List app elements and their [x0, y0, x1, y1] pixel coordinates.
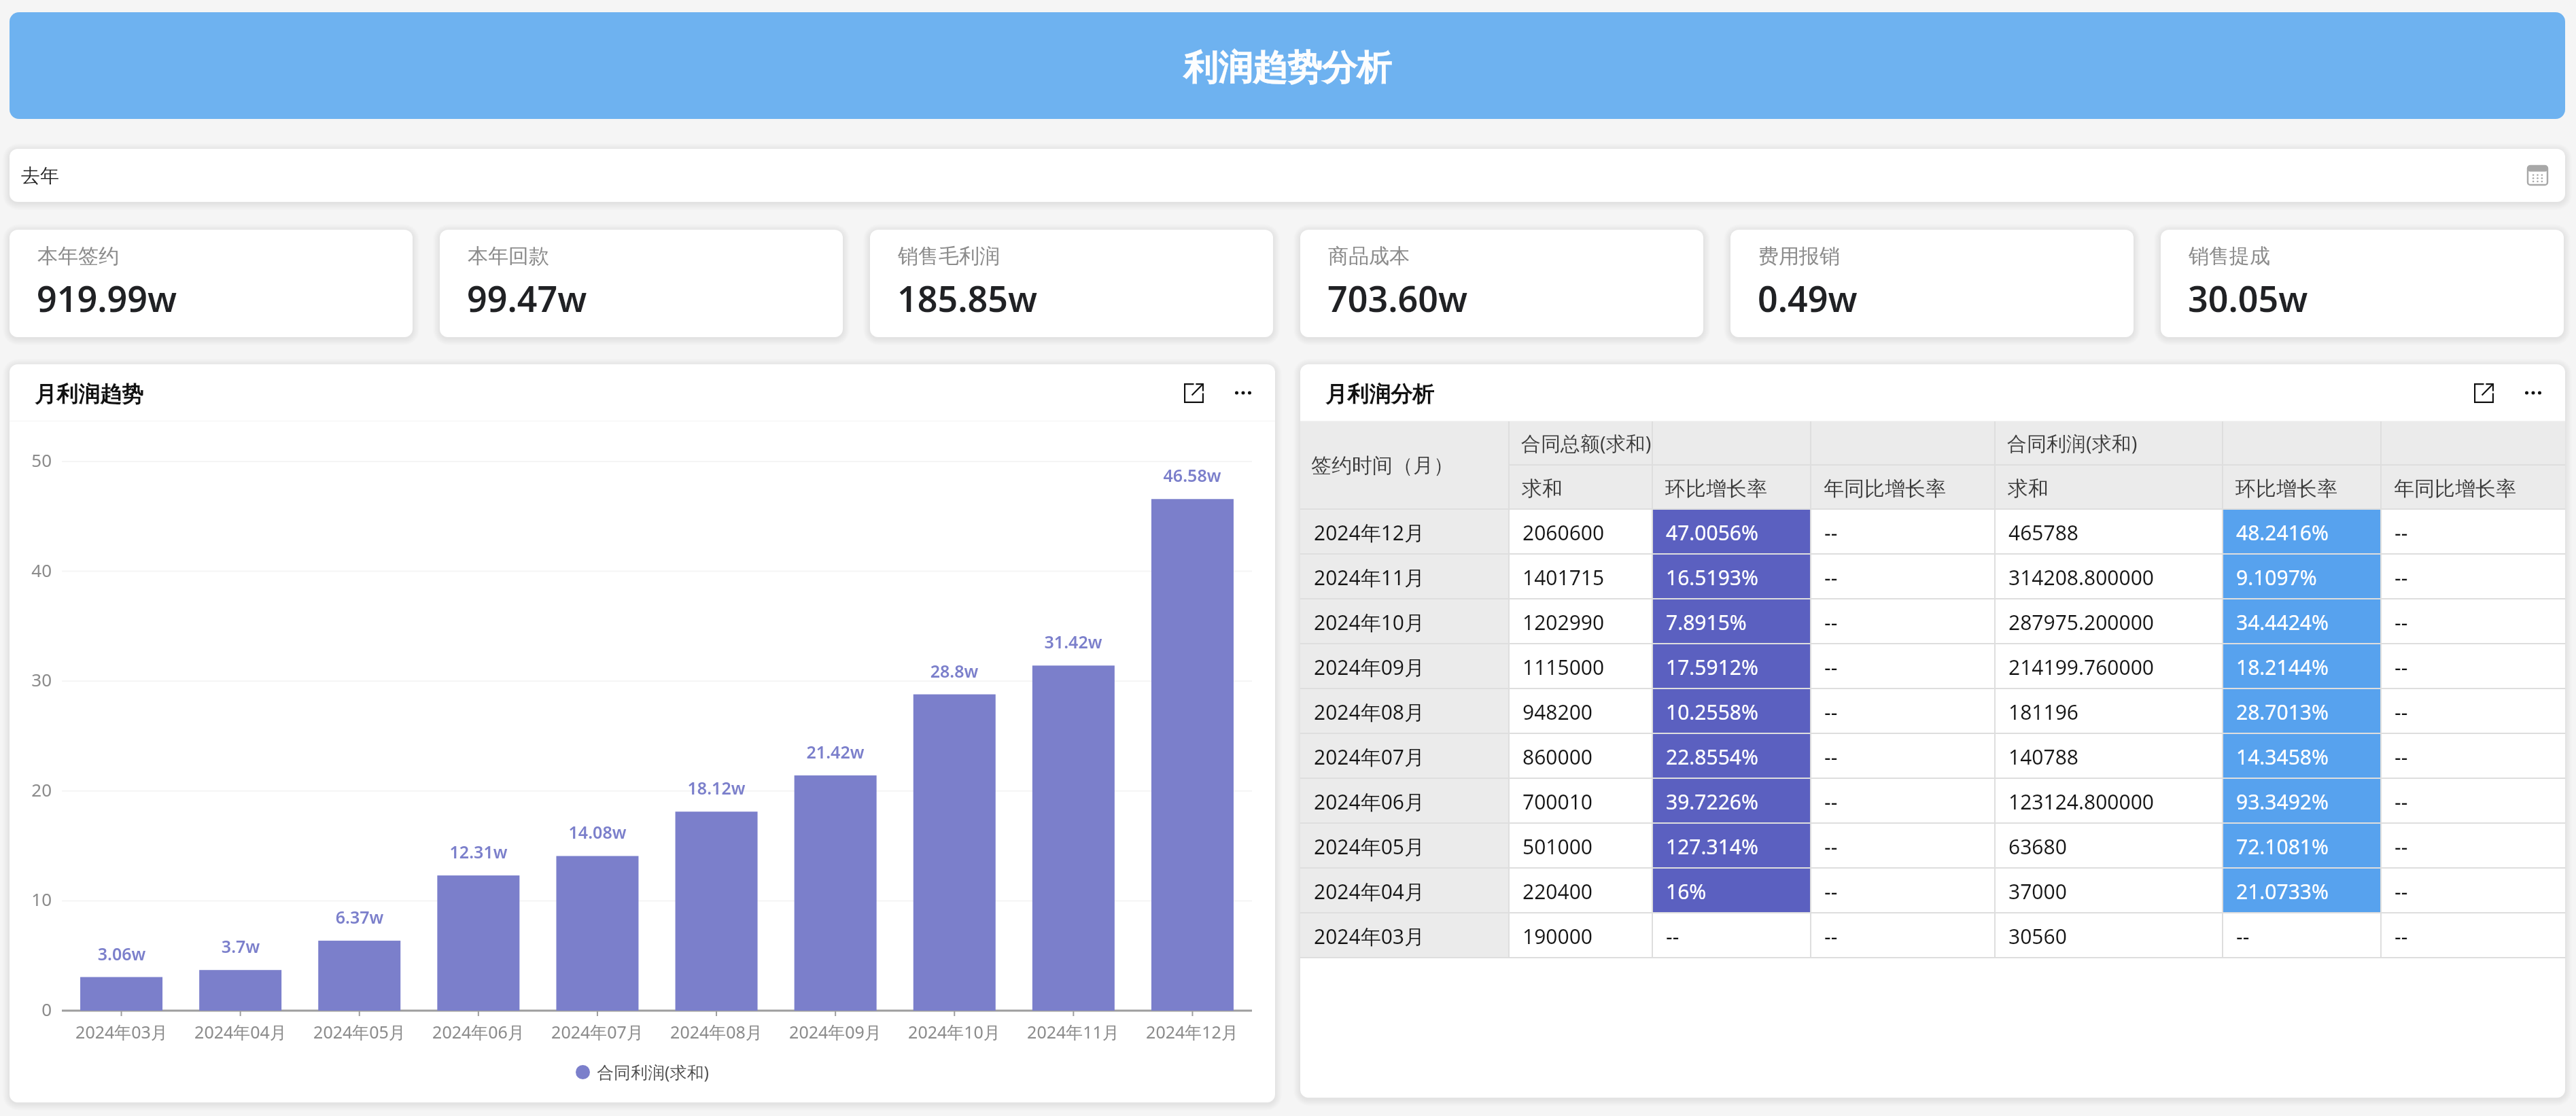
staticText: 22.8554% [1666, 743, 1758, 771]
staticText: -- [2236, 922, 2250, 950]
staticText: 18.2144% [2236, 653, 2329, 681]
staticText: 703.60w [1327, 274, 1468, 322]
staticText: 314208.800000 [2008, 563, 2154, 591]
staticText: -- [1824, 563, 1838, 591]
staticText: 环比增长率 [2235, 476, 2337, 502]
staticText: 0 [10, 997, 52, 1021]
staticText: 10 [10, 887, 52, 911]
staticText: 9.1097% [2236, 563, 2317, 591]
staticText: 16% [1666, 877, 1707, 905]
button[interactable]: More options [2514, 374, 2552, 412]
staticText: 利润趋势分析 [1183, 46, 1391, 90]
staticText: -- [1824, 922, 1838, 950]
button[interactable]: 费用报销 [1730, 230, 2134, 337]
staticText: 2024年08月 [648, 1020, 784, 1043]
staticText: 本年回款 [468, 243, 549, 269]
staticText: 123124.800000 [2008, 788, 2154, 816]
staticText: 签约时间（月） [1311, 453, 1454, 478]
staticText: -- [1824, 653, 1838, 681]
staticText: 2024年10月 [1314, 608, 1425, 636]
button[interactable]: Open full screen [1174, 374, 1213, 412]
button[interactable]: 2024年04月 [1300, 869, 2565, 913]
staticText: 2060600 [1522, 519, 1605, 546]
button[interactable]: Select date range [2518, 156, 2557, 195]
staticText: 2024年12月 [1124, 1020, 1260, 1043]
staticText: 30 [10, 667, 52, 691]
staticText: 销售毛利润 [898, 243, 1000, 269]
staticText: 2024年09月 [767, 1020, 903, 1043]
staticText: 99.47w [467, 274, 587, 322]
staticText: 销售提成 [2189, 243, 2270, 269]
staticText: 220400 [1522, 877, 1592, 905]
staticText: 63680 [2008, 833, 2067, 860]
staticText: -- [1666, 922, 1679, 950]
staticText: 2024年08月 [1314, 698, 1425, 726]
staticText: 2024年05月 [292, 1020, 428, 1043]
button[interactable]: 2024年11月 [1300, 555, 2565, 599]
staticText: 34.4424% [2236, 608, 2329, 636]
button[interactable]: 销售提成 [2161, 230, 2564, 337]
staticText: -- [1824, 608, 1838, 636]
staticText: -- [2395, 698, 2408, 726]
button[interactable]: 去年 [10, 149, 2565, 202]
button[interactable]: 2024年08月 [1300, 689, 2565, 734]
staticText: 合同利润(求和) [2007, 430, 2138, 457]
button[interactable]: 2024年06月 [1300, 779, 2565, 824]
staticText: 919.99w [37, 274, 177, 322]
button[interactable]: 2024年07月 [1300, 734, 2565, 779]
staticText: 本年签约 [37, 243, 119, 269]
staticText: 2024年06月 [411, 1020, 546, 1043]
button[interactable]: 2024年05月 [1300, 824, 2565, 869]
staticText: 2024年12月 [1314, 519, 1425, 546]
staticText: -- [1824, 698, 1838, 726]
button[interactable]: 本年签约 [10, 230, 413, 337]
staticText: 214199.760000 [2008, 653, 2154, 681]
staticText: 2024年07月 [1314, 743, 1425, 771]
staticText: 185.85w [897, 274, 1038, 322]
button[interactable]: More options [1224, 374, 1262, 412]
staticText: 2024年09月 [1314, 653, 1425, 681]
staticText: 月利润趋势 [35, 381, 143, 408]
staticText: -- [2395, 563, 2408, 591]
staticText: -- [2395, 877, 2408, 905]
staticText: 18.12w [648, 776, 784, 799]
button[interactable]: 利润趋势分析 [10, 12, 2565, 119]
staticText: -- [2395, 833, 2408, 860]
staticText: -- [1824, 833, 1838, 860]
staticText: 2024年11月 [1005, 1020, 1141, 1043]
button[interactable]: 2024年12月 [1300, 510, 2565, 555]
staticText: 37000 [2008, 877, 2067, 905]
staticText: 40 [10, 558, 52, 582]
staticText: -- [1824, 743, 1838, 771]
button[interactable]: 2024年03月 [1300, 913, 2565, 958]
staticText: 14.3458% [2236, 743, 2329, 771]
staticText: 48.2416% [2236, 519, 2329, 546]
staticText: 287975.200000 [2008, 608, 2154, 636]
staticText: 190000 [1522, 922, 1592, 950]
staticText: 2024年10月 [886, 1020, 1022, 1043]
staticText: 年同比增长率 [2394, 476, 2516, 502]
staticText: 7.8915% [1666, 608, 1747, 636]
staticText: 700010 [1522, 788, 1592, 816]
staticText: 年同比增长率 [1824, 476, 1946, 502]
button[interactable]: 销售毛利润 [870, 230, 1273, 337]
button[interactable]: 商品成本 [1300, 230, 1703, 337]
staticText: 72.1081% [2236, 833, 2329, 860]
staticText: 求和 [1522, 476, 1563, 502]
staticText: 2024年06月 [1314, 788, 1425, 816]
staticText: 合同利润(求和) [597, 1060, 710, 1083]
button[interactable]: Open full screen [2465, 374, 2503, 412]
staticText: 28.7013% [2236, 698, 2329, 726]
staticText: 环比增长率 [1665, 476, 1767, 502]
staticText: 合同总额(求和) [1521, 430, 1652, 457]
staticText: 6.37w [292, 905, 428, 928]
staticText: 2024年04月 [173, 1020, 309, 1043]
staticText: 2024年03月 [1314, 922, 1425, 950]
button[interactable]: 2024年10月 [1300, 599, 2565, 644]
staticText: 21.42w [767, 740, 903, 763]
staticText: -- [2395, 519, 2408, 546]
button[interactable]: 本年回款 [440, 230, 843, 337]
button[interactable]: 2024年09月 [1300, 644, 2565, 689]
staticText: -- [2395, 608, 2408, 636]
staticText: 181196 [2008, 698, 2078, 726]
